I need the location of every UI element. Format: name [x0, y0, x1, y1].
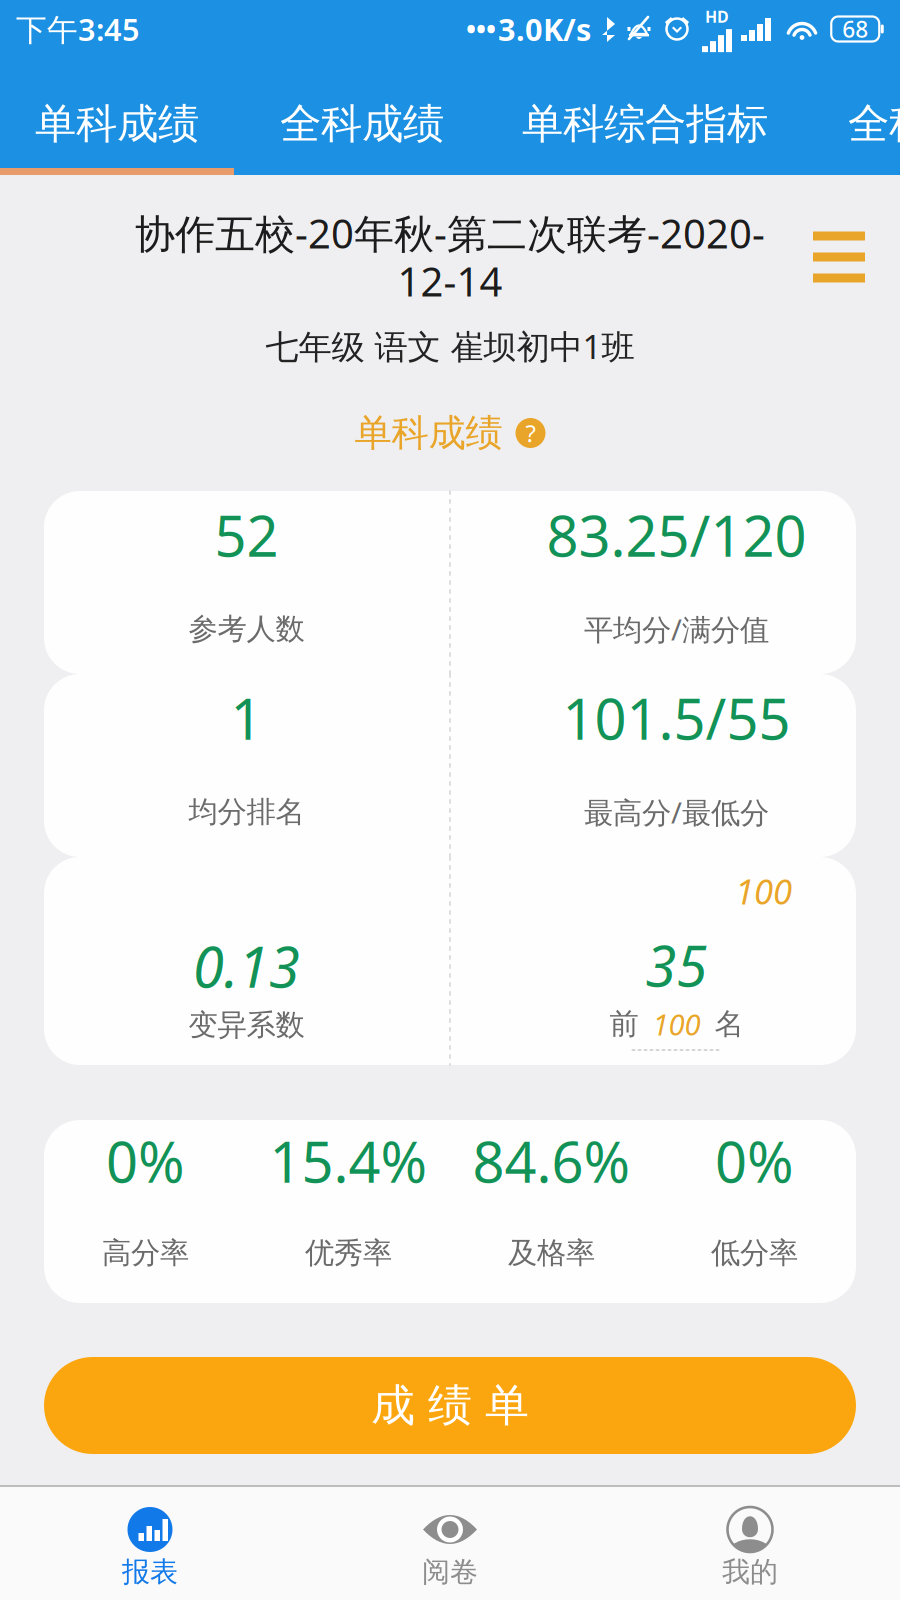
staticText: 单科成绩 — [35, 99, 199, 149]
button[interactable]: 全科成绩 — [234, 58, 490, 168]
staticText: 优秀率 — [305, 1235, 392, 1271]
staticText: 高分率 — [102, 1235, 189, 1271]
staticText: HD — [705, 6, 729, 27]
button[interactable]: 我的 — [600, 1487, 900, 1600]
staticText: ? — [525, 417, 535, 449]
staticText: 68 — [842, 14, 868, 44]
staticText: 12-14 — [397, 254, 502, 307]
staticText: 协作五校-20年秋-第二次联考-2020- — [135, 206, 765, 259]
staticText: 参考人数 — [188, 611, 304, 647]
staticText: 15.4% — [269, 1124, 427, 1198]
staticText: 全科成绩 — [280, 99, 444, 149]
staticText: 100 — [652, 1004, 700, 1043]
staticText: 0.13 — [193, 929, 300, 1003]
staticText: 0% — [715, 1124, 794, 1198]
staticText: 平均分/满分值 — [584, 609, 769, 648]
button[interactable]: 报表 — [0, 1487, 300, 1600]
staticText: 单科综合指标 — [522, 99, 768, 149]
staticText: 及格率 — [508, 1235, 595, 1271]
staticText: 0% — [106, 1124, 185, 1198]
staticText: 最高分/最低分 — [584, 792, 769, 831]
staticText: 全科 — [848, 99, 900, 149]
staticText: 单科成绩 — [354, 410, 502, 456]
staticText: 下午3:45 — [16, 9, 140, 49]
button[interactable]: Menu — [794, 217, 884, 297]
staticText: 均分排名 — [188, 794, 304, 830]
staticText: 52 — [214, 498, 278, 572]
staticText: 1 — [230, 681, 262, 755]
button[interactable]: 全科 — [800, 58, 900, 168]
staticText: 3.0K/s — [498, 9, 591, 49]
button[interactable]: 成 绩 单 — [44, 1357, 856, 1454]
staticText: 成 绩 单 — [371, 1378, 529, 1432]
button[interactable]: 单科综合指标 — [490, 58, 800, 168]
staticText: 名 — [714, 1006, 743, 1042]
staticText: 阅卷 — [422, 1555, 478, 1589]
staticText: 低分率 — [711, 1235, 798, 1271]
button[interactable]: 阅卷 — [300, 1487, 600, 1600]
staticText: 101.5/55 — [562, 681, 790, 755]
staticText: 我的 — [722, 1555, 778, 1589]
staticText: 前 — [609, 1006, 638, 1042]
staticText: 报表 — [122, 1555, 178, 1589]
staticText: 83.25/120 — [546, 498, 806, 572]
staticText: 变异系数 — [188, 1007, 304, 1043]
button[interactable]: 单科成绩 — [0, 58, 234, 168]
staticText: 七年级 语文 崔坝初中1班 — [265, 324, 634, 368]
staticText: 84.6% — [472, 1124, 630, 1198]
staticText: 35 — [645, 928, 707, 1002]
staticText: 100 — [735, 868, 792, 914]
staticText: ••• — [466, 11, 496, 47]
